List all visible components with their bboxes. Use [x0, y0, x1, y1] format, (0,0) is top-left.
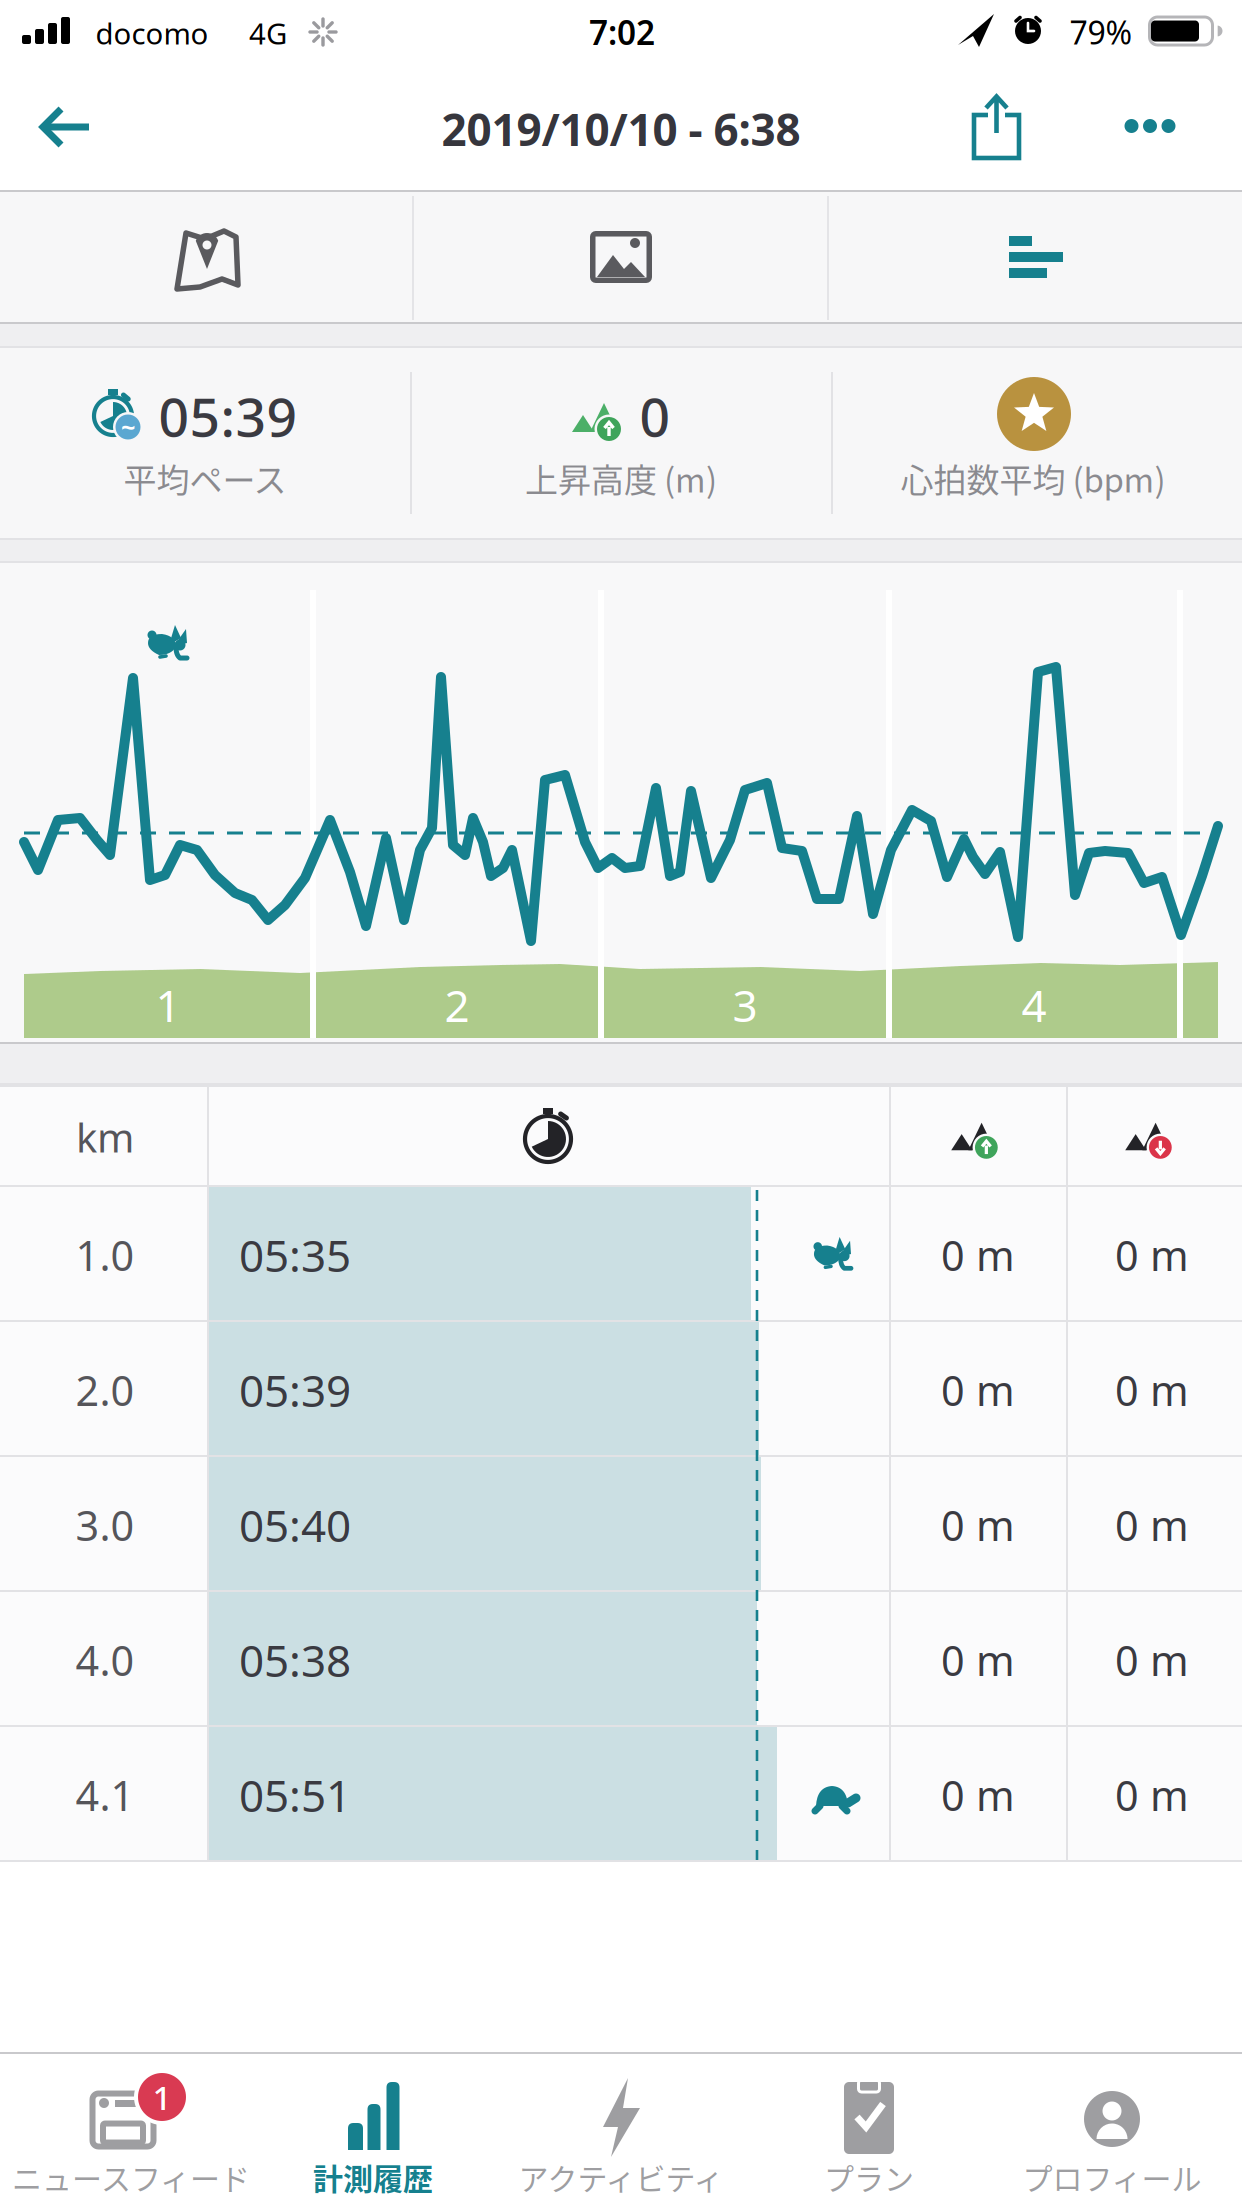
staticText: 4.1 [75, 1768, 134, 1822]
button[interactable]: Plan [745, 2056, 993, 2208]
staticText: ~ [121, 410, 135, 444]
staticText: 0 [639, 381, 670, 451]
staticText: 4G [249, 13, 287, 52]
staticText: 05:39 [239, 1361, 351, 1419]
staticText: 4.0 [75, 1633, 134, 1687]
staticText: 05:38 [239, 1631, 351, 1689]
staticText: 0 m [1115, 1768, 1189, 1822]
staticText: 3 [732, 976, 757, 1034]
staticText: km [76, 1110, 134, 1163]
staticText: ニュースフィード [12, 2155, 250, 2199]
staticText: 平均ペース [123, 454, 286, 502]
button[interactable]: Photos [416, 193, 826, 321]
staticText: 計測履歴 [313, 2155, 433, 2199]
staticText: 心拍数平均 (bpm) [900, 454, 1165, 502]
staticText: 05:40 [239, 1496, 351, 1554]
staticText: 3.0 [75, 1498, 134, 1552]
staticText: 2.0 [75, 1363, 134, 1417]
staticText: 0 m [941, 1363, 1015, 1417]
staticText: 0 m [941, 1768, 1015, 1822]
staticText: docomo [95, 13, 208, 52]
button[interactable]: Statistics [830, 193, 1240, 321]
staticText: 0 m [941, 1633, 1015, 1687]
staticText: 1.0 [75, 1228, 134, 1282]
staticText: 2 [444, 976, 469, 1034]
staticText: 0 m [1115, 1228, 1189, 1282]
button[interactable]: History [249, 2056, 497, 2208]
button[interactable]: Activity [497, 2056, 745, 2208]
button[interactable]: Map [2, 193, 412, 321]
staticText: 05:39 [158, 381, 297, 451]
staticText: 05:35 [239, 1226, 351, 1284]
staticText: 4 [1021, 976, 1046, 1034]
staticText: プラン [824, 2155, 914, 2199]
button[interactable]: Profile [994, 2056, 1242, 2208]
button[interactable]: Back [28, 92, 104, 162]
staticText: 0 m [941, 1228, 1015, 1282]
staticText: 2019/10/10 - 6:38 [441, 100, 800, 158]
staticText: 1 [155, 976, 180, 1034]
button[interactable]: News feed [0, 2056, 248, 2208]
staticText: 7:02 [589, 10, 655, 54]
staticText: 0 m [941, 1498, 1015, 1552]
staticText: 1 [152, 2075, 171, 2119]
staticText: 0 m [1115, 1633, 1189, 1687]
staticText: 上昇高度 (m) [525, 454, 717, 502]
button[interactable]: More [1110, 86, 1190, 166]
staticText: 79% [1069, 11, 1132, 53]
staticText: プロフィール [1022, 2155, 1201, 2199]
staticText: 0 m [1115, 1498, 1189, 1552]
button[interactable]: Share [957, 86, 1037, 166]
staticText: 05:51 [239, 1766, 351, 1824]
staticText: アクティビティ [518, 2155, 723, 2199]
staticText: 0 m [1115, 1363, 1189, 1417]
